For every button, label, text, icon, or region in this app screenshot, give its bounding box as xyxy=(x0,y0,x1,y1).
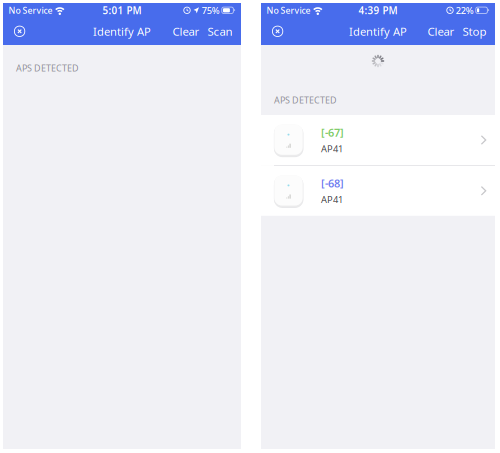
staticText: Scan xyxy=(207,23,232,39)
staticText: 22% xyxy=(456,4,474,17)
staticText: 4:39 PM xyxy=(358,4,397,17)
staticText: Stop xyxy=(462,23,486,39)
staticText: AP41 xyxy=(321,142,343,155)
staticText: [-68] xyxy=(321,176,344,191)
button[interactable]: Close xyxy=(6,20,33,43)
staticText: Identify AP xyxy=(93,24,151,39)
button[interactable]: [-68] xyxy=(261,166,495,216)
staticText: 5:01 PM xyxy=(102,4,141,17)
button[interactable]: Clear xyxy=(168,17,203,45)
staticText: AP41 xyxy=(321,193,343,206)
staticText: Identify AP xyxy=(349,24,407,39)
staticText: APS DETECTED xyxy=(16,62,79,74)
button[interactable]: Scan xyxy=(203,17,236,45)
staticText: [-67] xyxy=(321,125,344,140)
staticText: 75% xyxy=(202,4,220,17)
staticText: Clear xyxy=(427,23,454,39)
button[interactable]: Clear xyxy=(423,17,458,45)
button[interactable]: [-67] xyxy=(261,115,495,165)
staticText: APS DETECTED xyxy=(274,94,337,106)
button[interactable]: Stop xyxy=(458,17,490,45)
staticText: Clear xyxy=(172,23,199,39)
staticText: No Service xyxy=(8,4,52,16)
button[interactable]: Close xyxy=(264,20,291,43)
staticText: No Service xyxy=(266,4,310,16)
